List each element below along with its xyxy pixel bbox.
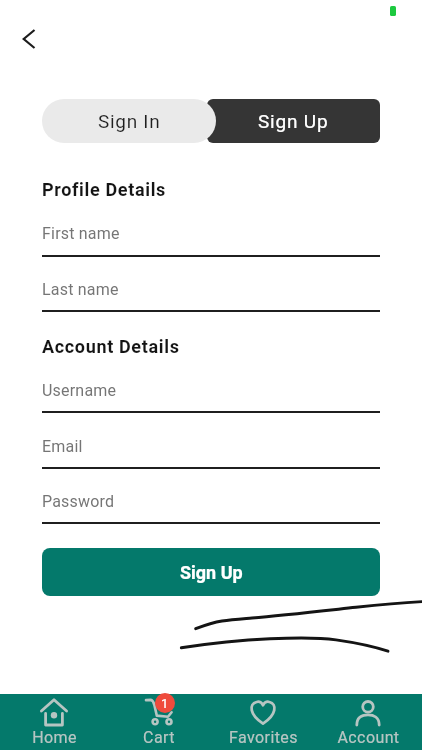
- staticText: Sign Up: [180, 562, 243, 583]
- staticText: Favorites: [229, 728, 298, 747]
- staticText: Sign In: [98, 110, 161, 132]
- button[interactable]: Sign Up: [42, 548, 380, 596]
- button[interactable]: Home: [4, 688, 104, 750]
- button[interactable]: Cart: [109, 688, 209, 750]
- staticText: Sign Up: [258, 110, 329, 132]
- staticText: Account: [337, 728, 400, 747]
- staticText: Last name: [42, 280, 119, 299]
- button[interactable]: Account: [318, 688, 418, 750]
- staticText: Username: [42, 381, 117, 400]
- staticText: Profile Details: [42, 179, 166, 200]
- button[interactable]: Favorites: [213, 688, 313, 750]
- staticText: Password: [42, 492, 115, 511]
- button[interactable]: Back: [11, 21, 47, 57]
- staticText: Email: [42, 437, 83, 456]
- staticText: First name: [42, 224, 120, 243]
- staticText: Cart: [143, 728, 175, 747]
- staticText: 1: [161, 696, 169, 711]
- button[interactable]: Sign Up: [207, 99, 380, 143]
- button[interactable]: Sign In: [42, 99, 216, 143]
- staticText: Home: [32, 728, 77, 747]
- staticText: Account Details: [42, 336, 180, 357]
